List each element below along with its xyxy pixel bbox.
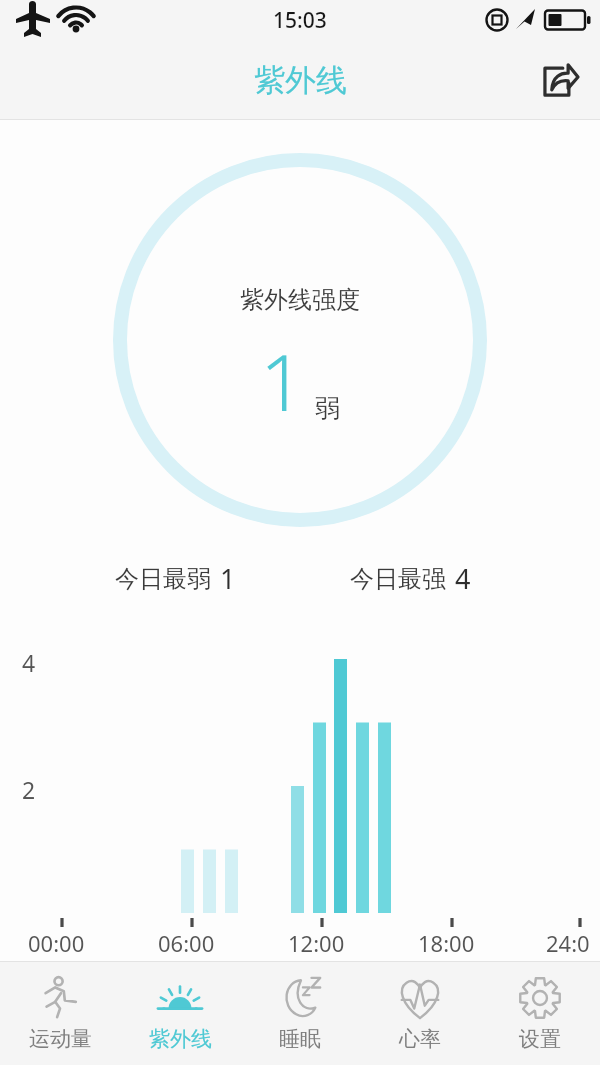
staticText: 设置 bbox=[519, 1026, 561, 1052]
staticText: 00:00 bbox=[28, 928, 85, 958]
staticText: 紫外线 bbox=[254, 61, 347, 100]
button[interactable]: 紫外线 bbox=[120, 962, 240, 1065]
staticText: 紫外线强度 bbox=[240, 285, 360, 315]
staticText: 弱 bbox=[315, 393, 340, 424]
staticText: 运动量 bbox=[29, 1026, 92, 1052]
staticText: 24:00 bbox=[546, 928, 600, 961]
staticText: 心率 bbox=[399, 1026, 441, 1052]
staticText: 06:00 bbox=[158, 928, 215, 958]
button[interactable]: 设置 bbox=[480, 962, 600, 1065]
button[interactable]: Share bbox=[530, 51, 588, 109]
button[interactable]: 心率 bbox=[360, 962, 480, 1065]
staticText: 4 bbox=[455, 560, 471, 597]
staticText: 睡眠 bbox=[279, 1026, 321, 1052]
staticText: 紫外线 bbox=[149, 1026, 212, 1052]
staticText: 今日最弱 bbox=[115, 564, 211, 594]
staticText: 4 bbox=[22, 647, 36, 678]
staticText: 18:00 bbox=[418, 928, 475, 958]
staticText: 12:00 bbox=[288, 928, 345, 958]
staticText: 1 bbox=[260, 328, 305, 434]
staticText: 2 bbox=[22, 774, 36, 805]
button[interactable]: 运动量 bbox=[0, 962, 120, 1065]
button[interactable]: 睡眠 bbox=[240, 962, 360, 1065]
staticText: 15:03 bbox=[273, 6, 327, 35]
staticText: 1 bbox=[220, 560, 236, 597]
staticText: 今日最强 bbox=[350, 564, 446, 594]
